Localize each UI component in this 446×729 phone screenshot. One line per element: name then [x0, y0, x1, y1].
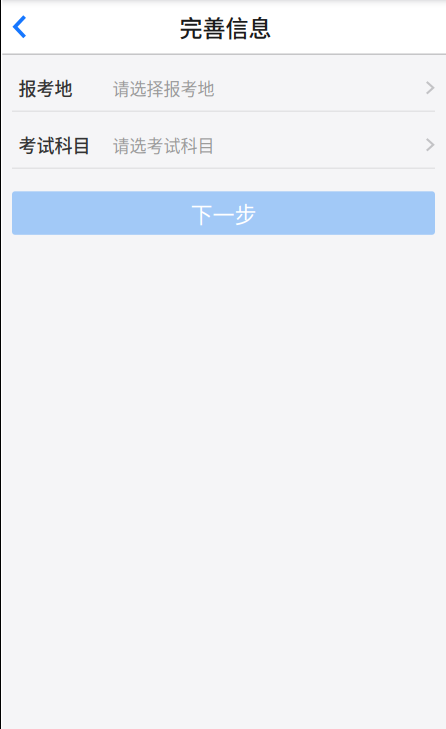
button[interactable]: Back — [0, 0, 46, 53]
button[interactable]: 下一步 — [12, 191, 435, 235]
button[interactable]: 考试科目 — [0, 112, 446, 167]
staticText: 完善信息 — [179, 10, 271, 43]
button[interactable]: 报考地 — [0, 55, 446, 110]
staticText: 请选择报考地 — [113, 75, 215, 100]
staticText: 报考地 — [19, 75, 73, 101]
staticText: 考试科目 — [19, 132, 91, 158]
staticText: 请选考试科目 — [113, 132, 215, 157]
staticText: 下一步 — [190, 197, 256, 229]
